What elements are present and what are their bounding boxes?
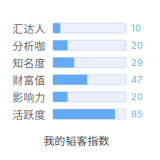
staticText: 47 — [131, 74, 142, 85]
staticText: 85 — [131, 108, 143, 120]
staticText: 20 — [131, 40, 143, 51]
button[interactable]: 影响力 — [0, 88, 160, 105]
staticText: 活跃度 — [12, 106, 45, 122]
staticText: 29 — [131, 57, 143, 68]
staticText: 影响力 — [12, 89, 45, 105]
staticText: 知名度 — [12, 55, 45, 70]
staticText: 我的韬客指数 — [43, 132, 109, 148]
button[interactable]: 活跃度 — [0, 105, 160, 123]
staticText: 20 — [131, 91, 143, 103]
staticText: 财富值 — [12, 72, 45, 87]
button[interactable]: 知名度 — [0, 54, 160, 71]
button[interactable]: 财富值 — [0, 71, 160, 88]
button[interactable]: 汇达人 — [0, 19, 160, 37]
button[interactable]: 分析咖 — [0, 37, 160, 54]
staticText: 分析咖 — [12, 38, 45, 53]
staticText: 汇达人 — [12, 20, 45, 36]
staticText: 10 — [131, 22, 141, 34]
